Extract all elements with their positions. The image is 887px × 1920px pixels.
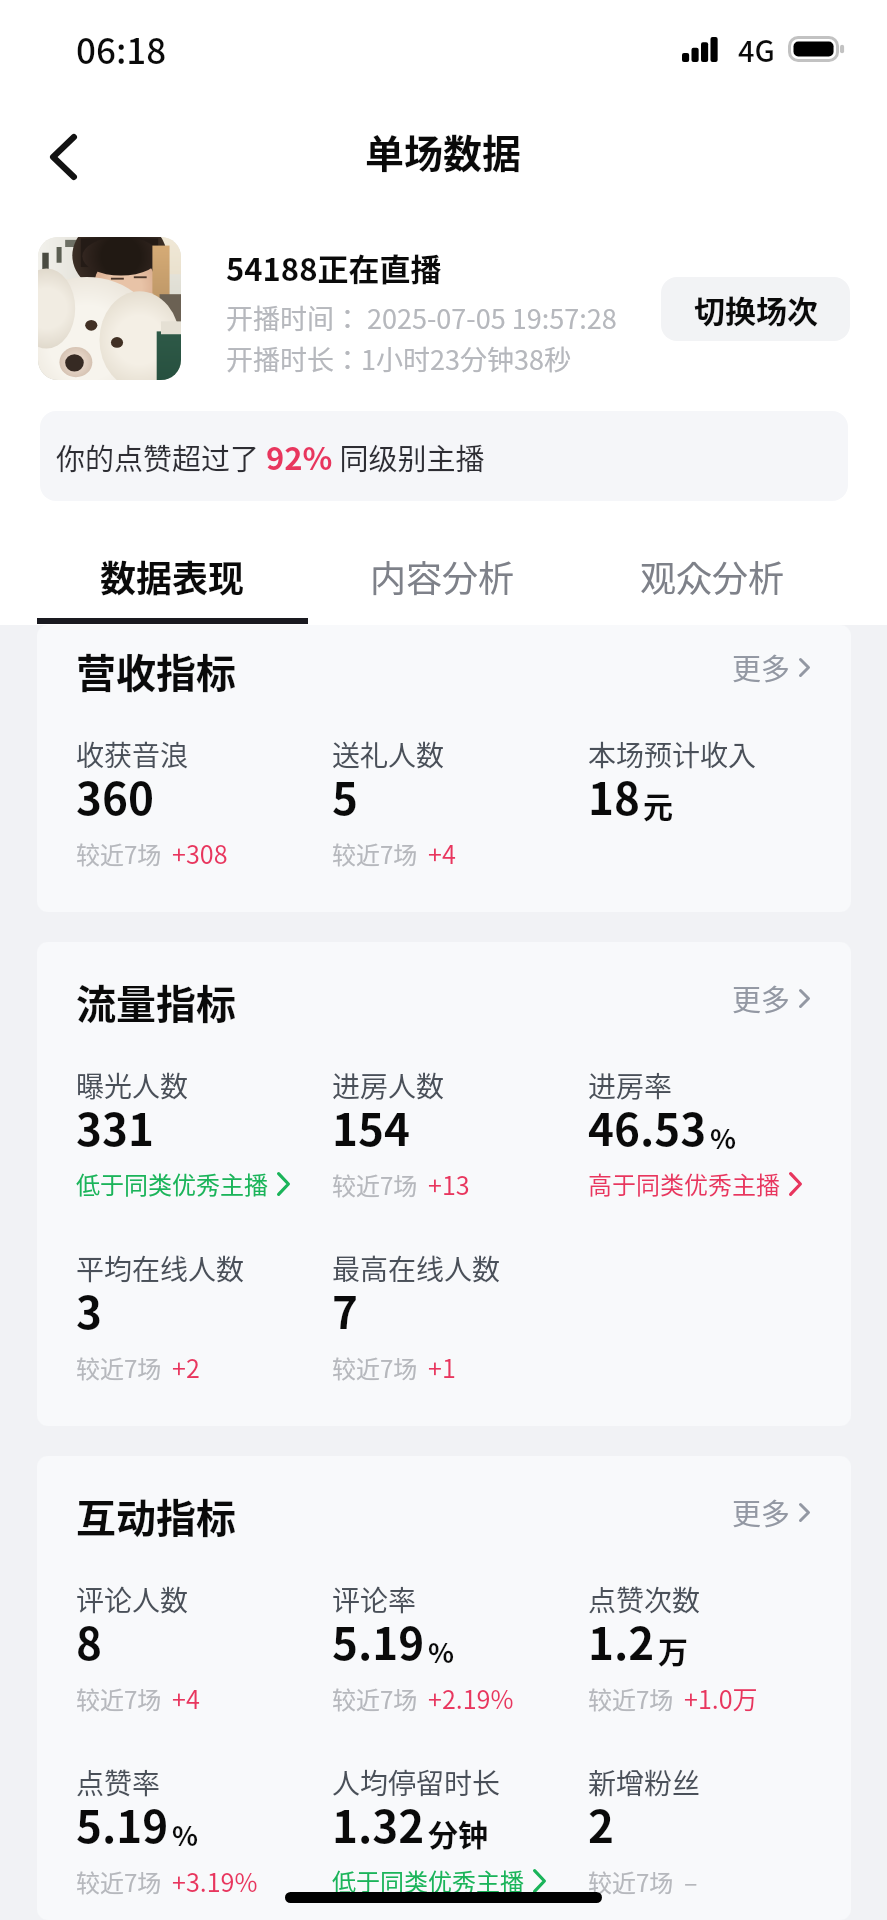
staticText: 营收指标 xyxy=(76,642,236,700)
staticText: +1.0万 xyxy=(684,1680,758,1716)
staticText: 进房率 xyxy=(588,1065,673,1106)
staticText: 较近7场 xyxy=(76,1681,162,1716)
staticText: 单场数据 xyxy=(365,123,522,179)
button[interactable]: 更多 xyxy=(732,977,851,1019)
staticText: 更多 xyxy=(732,646,791,688)
staticText: 开播时间： 2025-07-05 19:57:28 xyxy=(226,298,617,337)
staticText: 同级别主播 xyxy=(333,436,485,478)
staticText: 内容分析 xyxy=(370,550,515,602)
staticText: 3 xyxy=(76,1278,102,1342)
staticText: +1 xyxy=(428,1349,456,1385)
staticText: +3.19% xyxy=(172,1863,258,1899)
staticText: 较近7场 xyxy=(76,1350,162,1385)
staticText: 曝光人数 xyxy=(76,1065,189,1106)
staticText: 元 xyxy=(643,783,673,826)
staticText: 人均停留时长 xyxy=(332,1762,501,1803)
button[interactable]: 更多 xyxy=(732,646,851,688)
staticText: 你的点赞超过了 xyxy=(56,436,266,478)
staticText: 360 xyxy=(76,764,154,828)
staticText: 1.2 xyxy=(588,1609,655,1673)
staticText: +13 xyxy=(428,1166,470,1202)
staticText: +4 xyxy=(172,1680,200,1716)
staticText: 高于同类优秀主播 xyxy=(588,1166,780,1201)
staticText: % xyxy=(428,1632,455,1671)
button[interactable]: 切换场次 xyxy=(661,277,850,341)
staticText: 互动指标 xyxy=(76,1487,236,1545)
staticText: 数据表现 xyxy=(100,550,245,602)
staticText: 切换场次 xyxy=(694,287,818,332)
staticText: +2.19% xyxy=(428,1680,514,1716)
staticText: 4G xyxy=(738,28,775,70)
staticText: 8 xyxy=(76,1609,102,1673)
staticText: 5.19 xyxy=(332,1609,425,1673)
staticText: 新增粉丝 xyxy=(588,1762,701,1803)
staticText: 低于同类优秀主播 xyxy=(332,1863,524,1898)
staticText: 最高在线人数 xyxy=(332,1248,501,1289)
staticText: 92% xyxy=(266,434,333,479)
button[interactable]: 更多 xyxy=(732,1491,851,1533)
button[interactable]: 低于同类优秀主播 xyxy=(332,1863,546,1898)
staticText: 开播时长：1小时23分钟38秒 xyxy=(226,339,571,378)
staticText: 观众分析 xyxy=(640,550,785,602)
staticText: 本场预计收入 xyxy=(588,734,757,775)
staticText: 46.53 xyxy=(588,1095,707,1159)
staticText: 评论率 xyxy=(332,1579,417,1620)
staticText: 较近7场 xyxy=(332,1350,418,1385)
button[interactable]: 高于同类优秀主播 xyxy=(588,1166,802,1201)
staticText: 点赞次数 xyxy=(588,1579,701,1620)
button[interactable]: 内容分析 xyxy=(307,501,577,625)
staticText: 分钟 xyxy=(428,1811,488,1854)
staticText: 5 xyxy=(332,764,358,828)
staticText: +308 xyxy=(172,835,228,871)
staticText: 收获音浪 xyxy=(76,734,189,775)
staticText: 06:18 xyxy=(76,23,167,74)
button[interactable]: 低于同类优秀主播 xyxy=(76,1166,290,1201)
staticText: 较近7场 xyxy=(76,1864,162,1899)
staticText: +4 xyxy=(428,835,456,871)
staticText: 更多 xyxy=(732,977,791,1019)
staticText: 2 xyxy=(588,1792,614,1856)
staticText: 较近7场 xyxy=(588,1864,674,1899)
staticText: 54188正在直播 xyxy=(226,245,442,290)
staticText: % xyxy=(172,1815,199,1854)
staticText: +2 xyxy=(172,1349,200,1385)
staticText: 较近7场 xyxy=(332,1681,418,1716)
staticText: 更多 xyxy=(732,1491,791,1533)
staticText: 较近7场 xyxy=(588,1681,674,1716)
button[interactable]: 观众分析 xyxy=(577,501,847,625)
staticText: 平均在线人数 xyxy=(76,1248,245,1289)
staticText: 流量指标 xyxy=(76,973,236,1031)
staticText: % xyxy=(710,1118,737,1157)
staticText: 送礼人数 xyxy=(332,734,445,775)
staticText: 低于同类优秀主播 xyxy=(76,1166,268,1201)
staticText: 较近7场 xyxy=(332,836,418,871)
button[interactable]: 数据表现 xyxy=(37,501,307,625)
staticText: 5.19 xyxy=(76,1792,169,1856)
staticText: 7 xyxy=(332,1278,358,1342)
staticText: 较近7场 xyxy=(76,836,162,871)
staticText: 331 xyxy=(76,1095,154,1159)
staticText: – xyxy=(684,1863,698,1899)
staticText: 评论人数 xyxy=(76,1579,189,1620)
staticText: 进房人数 xyxy=(332,1065,445,1106)
button[interactable]: Back xyxy=(19,107,107,195)
staticText: 1.32 xyxy=(332,1792,425,1856)
staticText: 点赞率 xyxy=(76,1762,161,1803)
staticText: 154 xyxy=(332,1095,410,1159)
staticText: 较近7场 xyxy=(332,1167,418,1202)
staticText: 18 xyxy=(588,764,640,828)
staticText: 万 xyxy=(658,1628,688,1671)
